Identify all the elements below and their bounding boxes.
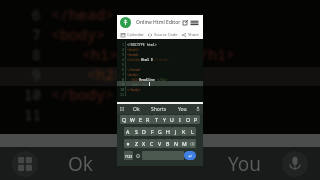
staticText: You (178, 106, 187, 113)
staticText: 2 (122, 47, 124, 51)
button[interactable]: D (140, 127, 148, 136)
button[interactable]: Shift (124, 139, 132, 148)
staticText: K (182, 128, 186, 135)
button[interactable]: T (152, 115, 160, 124)
staticText: F (151, 128, 154, 135)
staticText: <html> (127, 47, 139, 51)
button[interactable]: Enter (184, 151, 196, 160)
staticText: 10 (24, 85, 41, 104)
button[interactable]: Backspace (188, 139, 196, 148)
button[interactable]: Source Code (147, 32, 179, 37)
button[interactable]: Emoji (133, 151, 142, 160)
button[interactable]: V (156, 139, 164, 148)
staticText: W (130, 116, 135, 123)
staticText: 8 (122, 77, 124, 81)
button[interactable]: G (156, 127, 164, 136)
button[interactable]: K (180, 127, 188, 136)
button[interactable]: C (148, 139, 156, 148)
staticText: 10 (120, 87, 124, 91)
button[interactable]: Open in new window (183, 20, 188, 25)
staticText: Online Html Editor (136, 19, 181, 26)
button[interactable]: L (188, 127, 196, 136)
staticText: 9 (32, 65, 41, 84)
button[interactable]: ?123 (124, 151, 133, 160)
staticText: L (191, 128, 194, 135)
button[interactable]: Voice input (195, 106, 201, 112)
staticText: Z (135, 140, 138, 147)
button[interactable]: P (192, 115, 200, 124)
button[interactable]: M (180, 139, 188, 148)
staticText: </body> (51, 84, 115, 104)
staticText: O (186, 116, 191, 123)
staticText: 9 (122, 82, 124, 86)
button[interactable]: R (144, 115, 152, 124)
button[interactable]: S (132, 127, 140, 136)
button[interactable]: A (124, 127, 132, 136)
staticText: 6 (32, 5, 41, 24)
staticText: <title> (127, 57, 141, 61)
button[interactable]: O (184, 115, 192, 124)
staticText: A (126, 128, 130, 135)
button[interactable]: I (176, 115, 184, 124)
staticText: P (194, 116, 198, 123)
staticText: </head> (127, 67, 141, 71)
button[interactable]: N (172, 139, 180, 148)
button[interactable]: H (164, 127, 172, 136)
button[interactable]: J (172, 127, 180, 136)
staticText: Html E (141, 57, 153, 61)
button[interactable]: Menu (190, 18, 199, 27)
button[interactable]: Share (181, 32, 200, 37)
staticText: I (179, 116, 181, 123)
staticText: S (135, 128, 138, 135)
staticText: <h2></h2> (87, 64, 169, 84)
staticText: <!DOCTYPE html> (127, 42, 157, 46)
staticText: Ok (68, 151, 93, 177)
staticText: 7 (122, 72, 124, 76)
staticText: Share (188, 32, 199, 37)
staticText: 11 (24, 105, 41, 124)
staticText: </h2> (139, 82, 149, 86)
button[interactable]: Z (132, 139, 140, 148)
staticText: </head> (51, 4, 115, 24)
staticText: Q (122, 116, 127, 123)
staticText: N (174, 140, 178, 147)
staticText: <head> (127, 52, 139, 56)
staticText: </title> (153, 57, 169, 61)
staticText: Ok (133, 106, 140, 113)
staticText: <body> (127, 72, 139, 76)
staticText: H (166, 128, 170, 135)
button[interactable]: Keyboard switcher (119, 106, 125, 112)
staticText: X (142, 140, 146, 147)
button[interactable]: Y (160, 115, 168, 124)
staticText: 7 (32, 25, 41, 44)
button[interactable]: Q (120, 115, 128, 124)
button[interactable]: W (128, 115, 136, 124)
staticText: B (166, 140, 170, 147)
button[interactable]: Voice input (280, 149, 310, 179)
staticText: C (150, 140, 154, 147)
staticText: </h1> (155, 77, 167, 81)
staticText: ?123 (125, 154, 133, 158)
staticText: <h1> (131, 77, 139, 81)
staticText: 3 (122, 52, 124, 56)
staticText: <h1>Headline</h1> (82, 44, 236, 64)
staticText: G (158, 128, 162, 135)
button[interactable]: B (164, 139, 172, 148)
button[interactable]: E (136, 115, 144, 124)
button[interactable]: Calendar (120, 32, 145, 37)
staticText: </body> (127, 87, 141, 91)
staticText: 8 (32, 45, 41, 64)
staticText: R (146, 116, 150, 123)
staticText: T (155, 116, 158, 123)
staticText: 6 (122, 67, 124, 71)
button[interactable]: F (148, 127, 156, 136)
staticText: Headline (139, 77, 155, 81)
staticText: 11 (120, 92, 124, 96)
staticText: M (182, 140, 187, 147)
button[interactable]: X (140, 139, 148, 148)
button[interactable]: U (168, 115, 176, 124)
button[interactable]: Switch keyboard (10, 149, 40, 179)
staticText: V (158, 140, 162, 147)
staticText: Source Code (154, 32, 178, 37)
